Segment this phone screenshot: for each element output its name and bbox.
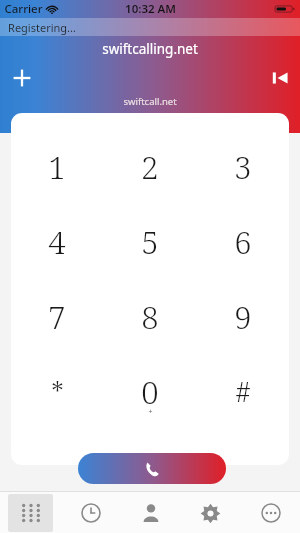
button[interactable]: Skip to start (264, 62, 296, 94)
staticText: 7 (48, 296, 66, 338)
staticText: swiftcalling.net (102, 40, 198, 58)
button[interactable]: # (196, 364, 289, 419)
button[interactable]: More (240, 492, 300, 533)
button[interactable]: 0 (103, 364, 196, 419)
staticText: 9 (234, 296, 252, 338)
button[interactable]: Contacts (120, 492, 180, 533)
button[interactable]: 9 (196, 289, 289, 344)
button[interactable]: Call (78, 453, 226, 484)
button[interactable]: Keypad (0, 492, 60, 533)
button[interactable]: Recents (60, 492, 120, 533)
staticText: 10:32 AM (125, 1, 176, 17)
staticText: 5 (141, 221, 159, 263)
staticText: 2 (141, 146, 159, 188)
button[interactable]: 5 (103, 214, 196, 269)
button[interactable]: 3 (196, 139, 289, 194)
button[interactable]: 6 (196, 214, 289, 269)
staticText: 8 (141, 296, 159, 338)
staticText: 4 (48, 221, 66, 263)
button[interactable]: * (11, 364, 103, 419)
staticText: 6 (234, 221, 252, 263)
staticText: * (51, 373, 64, 410)
staticText: + (148, 407, 153, 417)
button[interactable]: Settings (180, 492, 240, 533)
staticText: Registering... (8, 20, 76, 35)
staticText: Carrier (4, 1, 43, 17)
button[interactable]: 1 (11, 139, 103, 194)
button[interactable]: 2 (103, 139, 196, 194)
button[interactable]: 7 (11, 289, 103, 344)
staticText: 1 (48, 146, 66, 188)
staticText: # (235, 373, 251, 410)
button[interactable]: 8 (103, 289, 196, 344)
staticText: swiftcall.net (123, 95, 177, 108)
staticText: 0 (141, 371, 159, 413)
button[interactable]: Add contact (6, 62, 38, 94)
staticText: 3 (234, 146, 252, 188)
button[interactable]: 4 (11, 214, 103, 269)
